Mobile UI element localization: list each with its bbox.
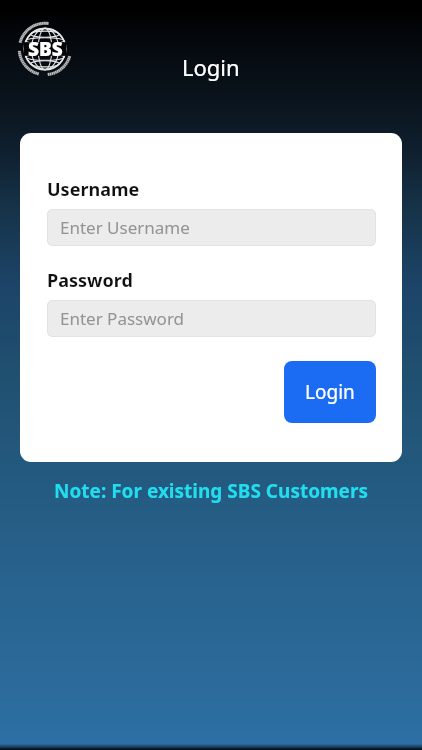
button[interactable]: Enter Password: [47, 300, 376, 337]
staticText: SBS: [28, 36, 63, 62]
staticText: Login: [182, 52, 240, 82]
staticText: Enter Password: [60, 307, 185, 330]
button[interactable]: Enter Username: [47, 209, 376, 246]
staticText: Password: [47, 268, 133, 293]
staticText: Username: [47, 177, 140, 202]
staticText: Enter Username: [60, 216, 190, 239]
staticText: Note: For existing SBS Customers: [54, 478, 368, 504]
staticText: Login: [305, 379, 355, 405]
button[interactable]: Login: [284, 361, 376, 423]
other: SBS Worldwide Logistics Solutions logo: [16, 20, 74, 78]
